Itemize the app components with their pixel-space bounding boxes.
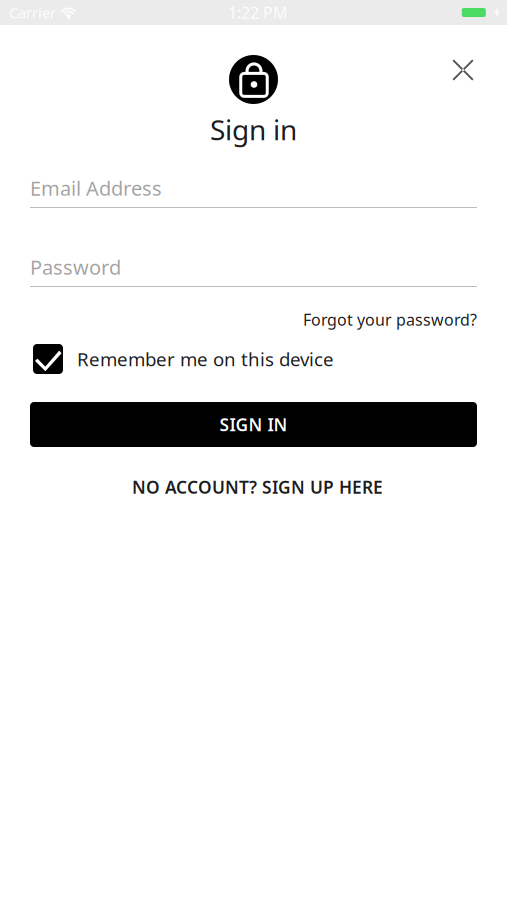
staticText: Password	[30, 254, 121, 280]
staticText: Email Address	[30, 175, 162, 201]
button[interactable]: Close	[441, 48, 485, 92]
staticText: 1:22 PM	[228, 2, 288, 23]
staticText: Sign in	[210, 111, 297, 148]
staticText: Carrier	[9, 3, 56, 22]
staticText: Remember me on this device	[77, 347, 334, 371]
button[interactable]: SIGN IN	[30, 402, 477, 447]
staticText: NO ACCOUNT? SIGN UP HERE	[132, 475, 383, 498]
button[interactable]: Forgot your password?	[30, 309, 477, 330]
button[interactable]: Remember me on this device	[30, 344, 477, 374]
staticText: Forgot your password?	[303, 309, 477, 330]
staticText: SIGN IN	[219, 413, 287, 436]
button[interactable]: NO ACCOUNT? SIGN UP HERE	[30, 476, 477, 498]
